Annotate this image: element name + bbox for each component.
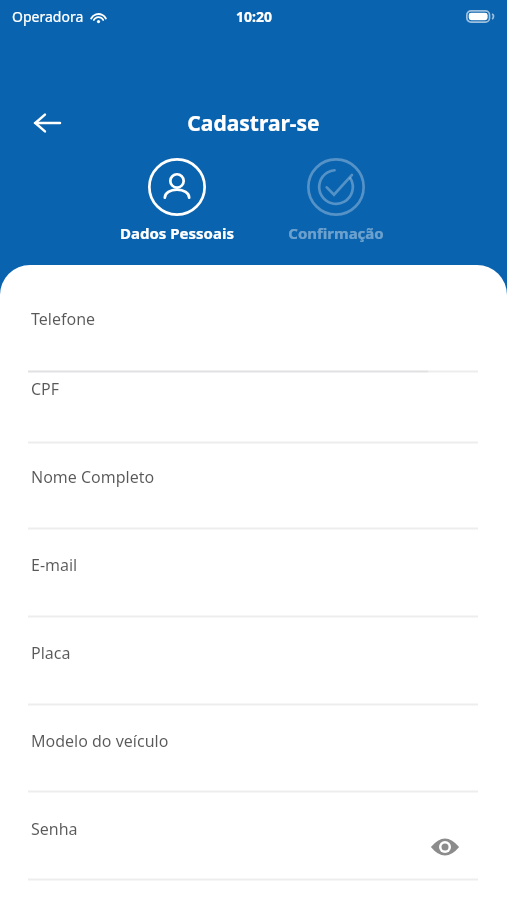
button[interactable]: Dados Pessoais <box>102 157 252 243</box>
staticText: Modelo do veículo <box>31 730 169 752</box>
button[interactable] <box>0 454 507 512</box>
staticText: Placa <box>31 642 71 664</box>
button[interactable]: Voltar <box>26 102 68 144</box>
staticText: Nome Completo <box>31 466 155 488</box>
staticText: Operadora <box>12 7 84 26</box>
staticText: E-mail <box>31 554 78 576</box>
button[interactable]: Mostrar senha <box>424 826 466 868</box>
button[interactable] <box>0 542 507 600</box>
button[interactable] <box>0 630 507 688</box>
button[interactable]: Confirmação <box>261 157 411 243</box>
button[interactable] <box>0 296 507 354</box>
staticText: 10:20 <box>236 7 272 26</box>
staticText: Telefone <box>31 308 96 330</box>
button[interactable] <box>0 806 507 864</box>
staticText: Confirmação <box>288 223 384 243</box>
staticText: CPF <box>31 378 60 400</box>
staticText: Cadastrar-se <box>0 109 507 138</box>
staticText: Senha <box>31 818 78 840</box>
staticText: Dados Pessoais <box>120 223 234 243</box>
button[interactable] <box>0 366 507 424</box>
button[interactable] <box>0 718 507 776</box>
